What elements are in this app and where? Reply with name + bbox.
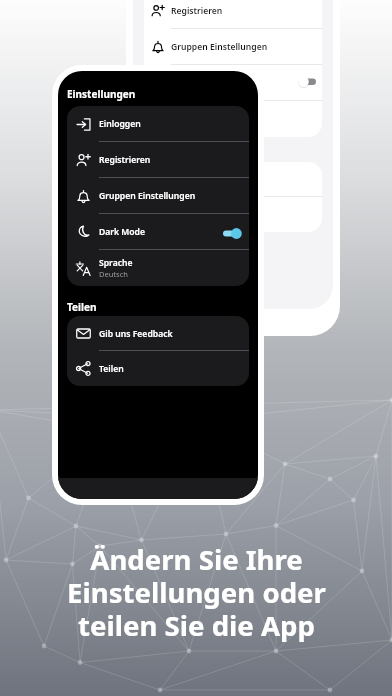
button[interactable]: Gib uns Feedback bbox=[144, 162, 322, 197]
button[interactable]: Sprache bbox=[144, 101, 322, 137]
staticText: Einloggen bbox=[99, 118, 141, 130]
button[interactable]: Dark Mode bbox=[144, 65, 322, 101]
staticText: Einstellungen bbox=[67, 87, 136, 101]
staticText: Teilen bbox=[67, 300, 97, 314]
staticText: Ändern Sie Ihre Einstellungen oder teile… bbox=[67, 540, 326, 644]
staticText: Registrieren bbox=[171, 5, 223, 17]
button[interactable]: Registrieren bbox=[144, 0, 322, 29]
button[interactable]: Sprache bbox=[67, 250, 249, 286]
button[interactable]: Einloggen bbox=[67, 106, 249, 142]
button[interactable]: Gib uns Feedback bbox=[67, 316, 249, 351]
staticText: Gruppen Einstellungen bbox=[99, 190, 196, 202]
button[interactable]: Gruppen Einstellungen bbox=[144, 29, 322, 65]
staticText: Deutsch bbox=[99, 269, 128, 279]
staticText: Gruppen Einstellungen bbox=[171, 41, 268, 53]
staticText: Gib uns Feedback bbox=[171, 174, 245, 186]
staticText: Gib uns Feedback bbox=[99, 328, 173, 340]
button[interactable]: Gruppen Einstellungen bbox=[67, 178, 249, 214]
button[interactable]: Registrieren bbox=[67, 142, 249, 178]
button[interactable]: Dark Mode bbox=[67, 214, 249, 250]
staticText: Teilen bbox=[99, 363, 124, 375]
staticText: Teilen bbox=[171, 209, 196, 221]
button[interactable]: Teilen bbox=[144, 197, 322, 232]
staticText: Sprache bbox=[99, 257, 133, 269]
staticText: Registrieren bbox=[99, 154, 151, 166]
staticText: Dark Mode bbox=[99, 226, 146, 238]
button[interactable]: Teilen bbox=[67, 351, 249, 386]
